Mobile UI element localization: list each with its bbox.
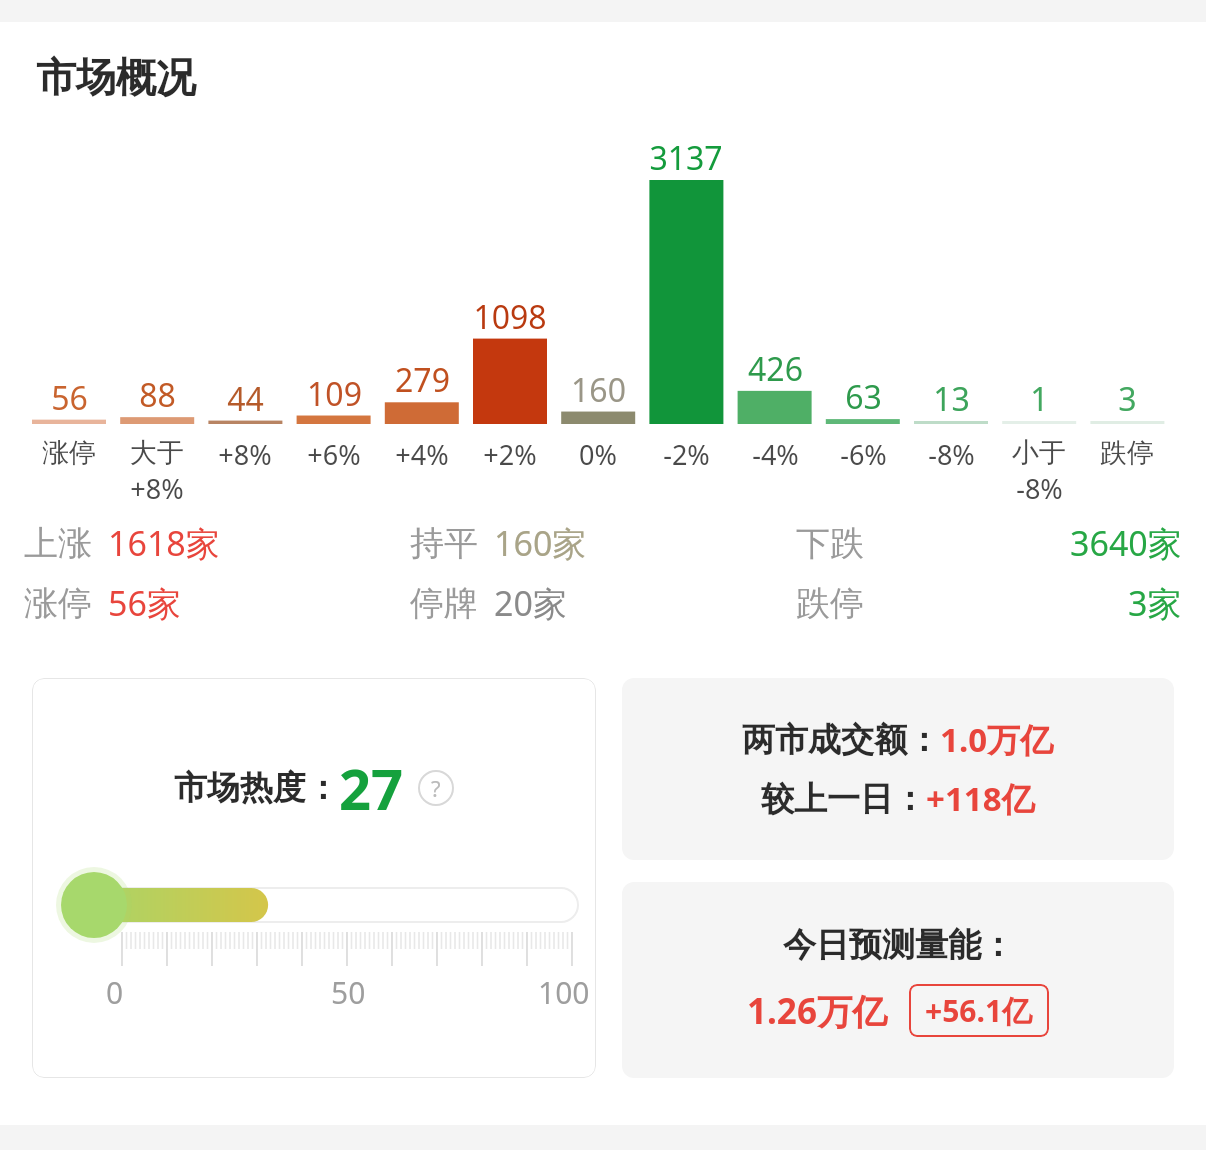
- staticText: 1098: [473, 295, 547, 339]
- staticText: 1618家: [108, 520, 220, 566]
- staticText: +8%: [218, 436, 272, 473]
- staticText: +6%: [307, 436, 361, 473]
- staticText: 88: [139, 373, 176, 417]
- staticText: 两市成交额：: [742, 719, 940, 761]
- button[interactable]: 市场热度：: [32, 678, 596, 1078]
- staticText: +2%: [483, 436, 537, 473]
- staticText: 下跌: [796, 522, 864, 565]
- staticText: +56.1亿: [925, 990, 1033, 1031]
- staticText: 160家: [494, 520, 587, 566]
- staticText: 27: [339, 750, 404, 826]
- staticText: -8%: [1016, 470, 1063, 507]
- staticText: 市场概况: [36, 52, 196, 102]
- staticText: -6%: [840, 436, 887, 473]
- staticText: 今日预测量能：: [783, 924, 1014, 966]
- staticText: 160: [571, 368, 626, 412]
- staticText: 跌停: [1100, 436, 1154, 470]
- staticText: -2%: [663, 436, 710, 473]
- staticText: +8%: [130, 470, 184, 507]
- button[interactable]: 市场热度说明: [418, 770, 454, 806]
- staticText: 持平: [410, 522, 478, 565]
- staticText: 涨停: [24, 582, 92, 625]
- button[interactable]: 两市成交额：: [622, 678, 1174, 860]
- staticText: 3137: [649, 136, 723, 180]
- staticText: 停牌: [410, 582, 478, 625]
- staticText: 279: [395, 358, 450, 402]
- staticText: 100: [538, 972, 590, 1013]
- staticText: 109: [307, 372, 362, 416]
- staticText: 44: [227, 377, 264, 421]
- staticText: 0%: [579, 436, 617, 473]
- staticText: 20家: [494, 580, 567, 626]
- staticText: 1: [1030, 377, 1049, 421]
- staticText: 50: [331, 972, 366, 1013]
- staticText: 大于: [130, 436, 184, 470]
- staticText: 3640家: [1070, 520, 1182, 566]
- staticText: +118亿: [926, 776, 1035, 821]
- staticText: 小于: [1012, 436, 1066, 470]
- staticText: 上涨: [24, 522, 92, 565]
- staticText: 56家: [108, 580, 181, 626]
- button[interactable]: 今日预测量能：: [622, 882, 1174, 1078]
- staticText: 涨停: [42, 436, 96, 470]
- staticText: 1.0万亿: [940, 717, 1054, 762]
- staticText: 较上一日：: [761, 778, 926, 820]
- staticText: -4%: [752, 436, 799, 473]
- staticText: +4%: [395, 436, 449, 473]
- staticText: 56: [51, 376, 88, 420]
- staticText: 63: [845, 375, 882, 419]
- staticText: 3: [1118, 377, 1137, 421]
- staticText: 3家: [1128, 580, 1182, 626]
- staticText: ?: [431, 773, 441, 803]
- staticText: 跌停: [796, 582, 864, 625]
- button[interactable]: +56.1亿: [925, 990, 1033, 1031]
- staticText: 市场热度：: [174, 767, 339, 809]
- staticText: 426: [748, 347, 803, 391]
- staticText: 0: [106, 972, 124, 1013]
- staticText: -8%: [928, 436, 975, 473]
- staticText: 1.26万亿: [747, 987, 887, 1035]
- staticText: 13: [933, 377, 970, 421]
